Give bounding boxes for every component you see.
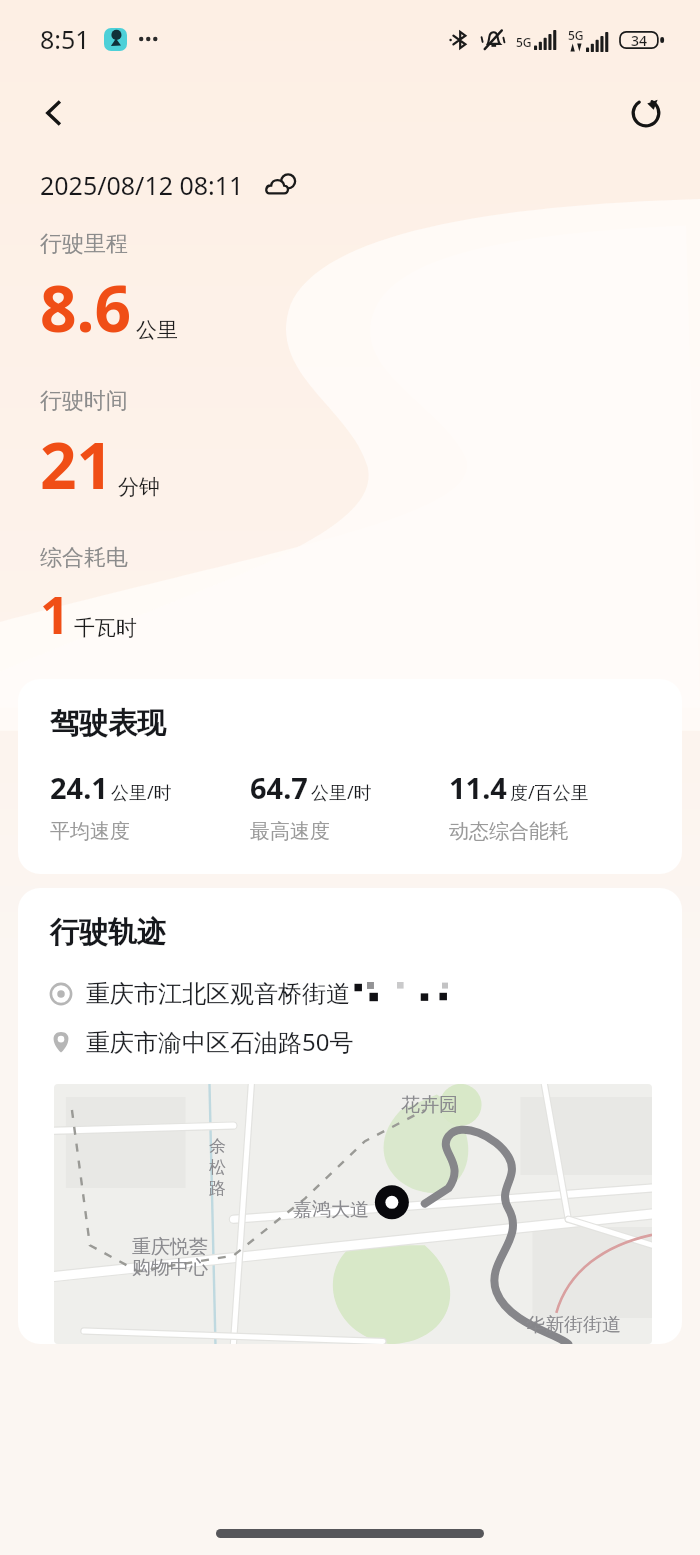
staticText: 松	[209, 1157, 226, 1178]
staticText: 1	[40, 578, 70, 649]
staticText: 花卉园	[401, 1093, 458, 1117]
staticText: 动态综合能耗	[449, 819, 569, 844]
staticText: 最高速度	[250, 819, 330, 844]
staticText: 5G	[568, 27, 584, 43]
staticText: 24.1	[50, 768, 108, 807]
staticText: 购物中心	[132, 1256, 208, 1280]
staticText: 分钟	[118, 474, 160, 500]
staticText: 21	[40, 421, 114, 508]
staticText: 8.6	[40, 264, 132, 351]
button[interactable]: Route map	[54, 1084, 652, 1344]
staticText: 路	[209, 1178, 226, 1199]
staticText: 重庆市渝中区石油路50号	[86, 1025, 354, 1058]
staticText: 行驶里程	[40, 230, 128, 258]
staticText: 8:51	[40, 22, 90, 56]
staticText: 11.4	[449, 768, 507, 807]
staticText: 重庆悦荟	[132, 1235, 208, 1259]
staticText: 嘉鸿大道	[293, 1198, 369, 1222]
staticText: 综合耗电	[40, 544, 128, 572]
staticText: 5G	[516, 34, 532, 50]
staticText: 公里/时	[111, 780, 172, 805]
staticText: 华新街街道	[526, 1313, 621, 1337]
button[interactable]: 行驶轨迹	[18, 888, 682, 1344]
staticText: 重庆市江北区观音桥街道	[86, 979, 350, 1009]
staticText: 行驶轨迹	[50, 914, 166, 951]
staticText: 驾驶表现	[50, 705, 166, 742]
staticText: 行驶时间	[40, 387, 128, 415]
staticText: 余	[209, 1136, 226, 1157]
staticText: 公里	[136, 317, 178, 343]
staticText: 平均速度	[50, 819, 130, 844]
staticText: 度/百公里	[510, 780, 589, 805]
staticText: 64.7	[250, 768, 308, 807]
button[interactable]: Refresh	[618, 85, 674, 141]
staticText: 34	[631, 31, 648, 50]
staticText: 2025/08/12 08:11	[40, 168, 244, 202]
staticText: 千瓦时	[74, 615, 137, 641]
staticText: 公里/时	[311, 780, 372, 805]
button[interactable]: 驾驶表现	[18, 679, 682, 874]
button[interactable]: Back	[26, 85, 82, 141]
